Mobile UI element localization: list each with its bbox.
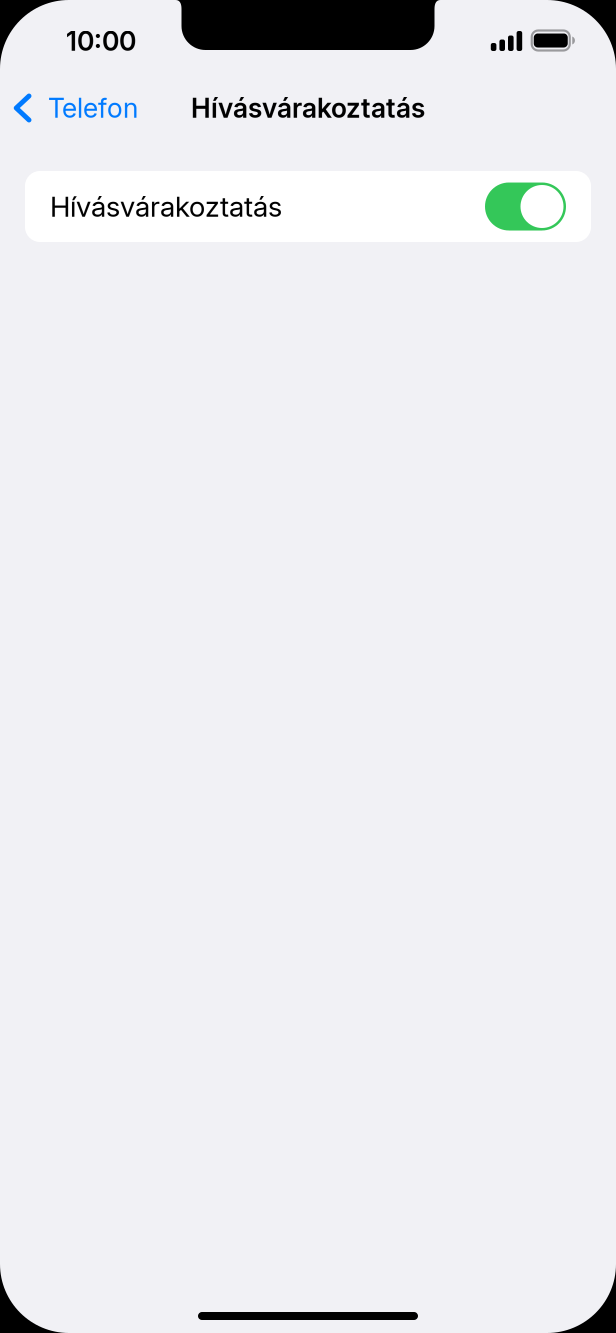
button[interactable]: Telefon [0,79,148,137]
staticText: 10:00 [66,25,136,57]
staticText: Hívásvárakoztatás [50,190,282,223]
staticText: Telefon [48,92,138,124]
button[interactable]: Hívásvárakoztatás [25,171,591,242]
staticText: Hívásvárakoztatás [191,92,425,124]
